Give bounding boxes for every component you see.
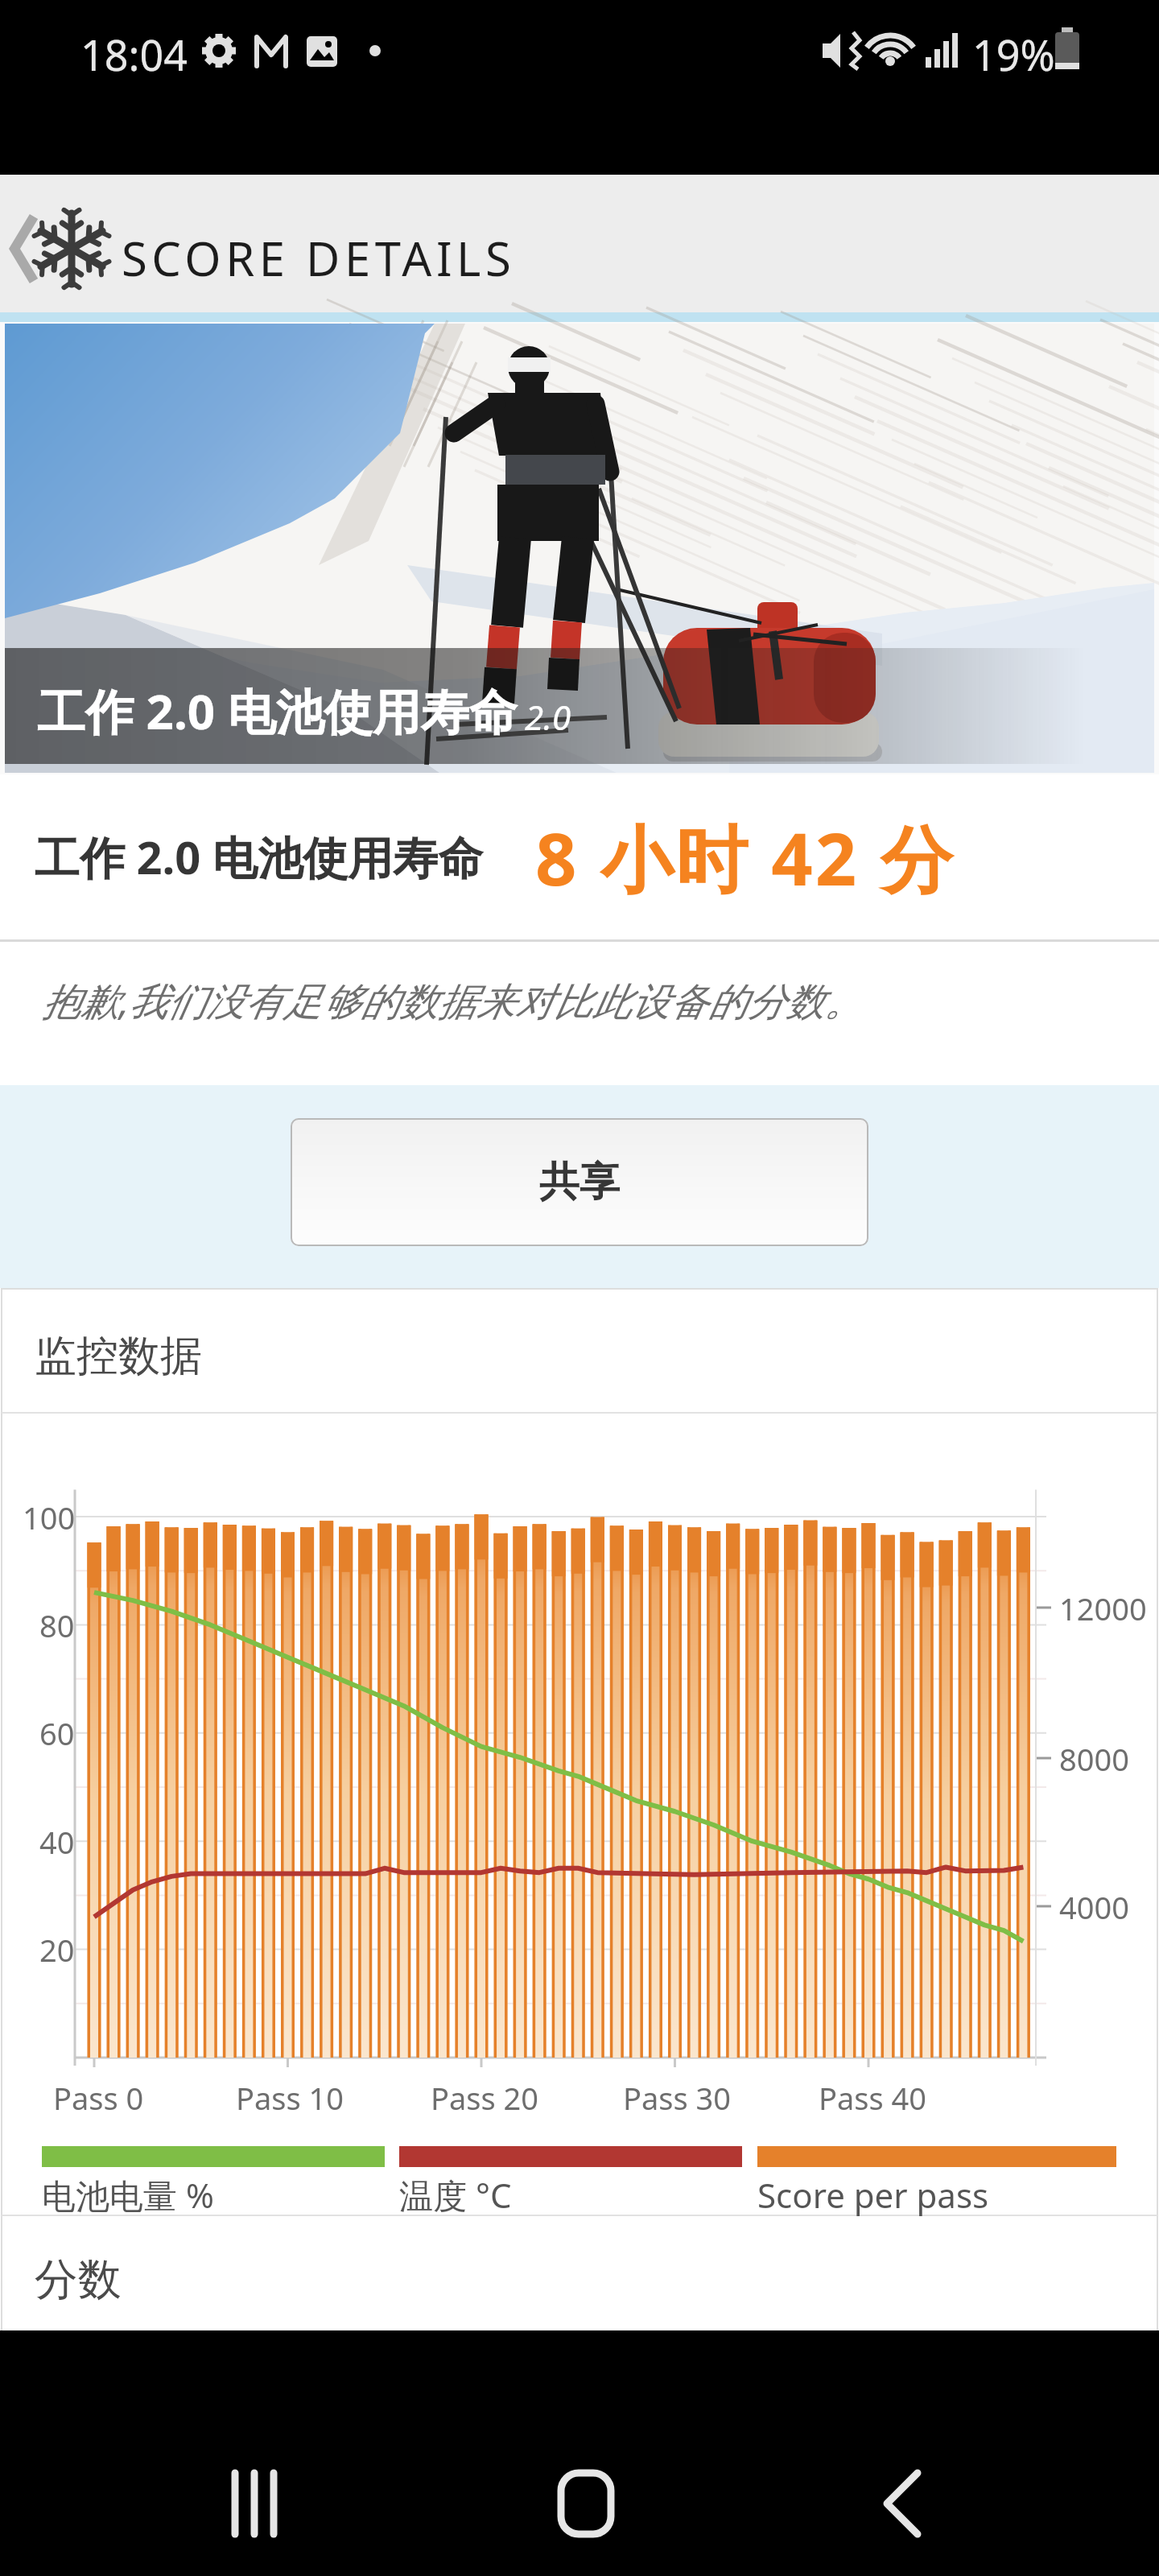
- staticText: Pass 40: [819, 2077, 927, 2119]
- staticText: 2.0: [525, 694, 571, 740]
- staticText: 100: [23, 1496, 76, 1538]
- staticText: 18:04: [80, 26, 188, 83]
- staticText: Pass 0: [53, 2077, 144, 2119]
- staticText: 20: [39, 1929, 75, 1971]
- staticText: 工作 2.0 电池使用寿命: [37, 678, 518, 744]
- staticText: 8 小时 42 分: [535, 808, 955, 907]
- staticText: SCORE DETAILS: [122, 226, 516, 290]
- staticText: 抱歉,我们没有足够的数据来对比此设备的分数。: [42, 974, 864, 1027]
- staticText: 12000: [1059, 1587, 1147, 1629]
- button[interactable]: [852, 2451, 956, 2556]
- staticText: 共享: [539, 1157, 620, 1207]
- button[interactable]: [534, 2451, 638, 2556]
- staticText: 80: [39, 1604, 75, 1646]
- staticText: 60: [39, 1712, 75, 1754]
- staticText: 4000: [1059, 1886, 1129, 1928]
- button[interactable]: [201, 2451, 306, 2556]
- staticText: Pass 10: [236, 2077, 344, 2119]
- button[interactable]: SCORE DETAILS: [0, 175, 1159, 312]
- staticText: 温度 °C: [399, 2172, 512, 2218]
- staticText: Pass 30: [623, 2077, 732, 2119]
- staticText: 分数: [35, 2252, 122, 2307]
- staticText: 8000: [1059, 1738, 1129, 1780]
- staticText: 40: [39, 1821, 75, 1863]
- staticText: Pass 20: [431, 2077, 539, 2119]
- staticText: 工作 2.0 电池使用寿命: [35, 826, 483, 887]
- staticText: Score per pass: [757, 2172, 989, 2218]
- staticText: 监控数据: [35, 1330, 202, 1383]
- staticText: 19%: [972, 26, 1055, 83]
- button[interactable]: 共享: [291, 1118, 868, 1246]
- staticText: 电池电量 %: [42, 2172, 214, 2218]
